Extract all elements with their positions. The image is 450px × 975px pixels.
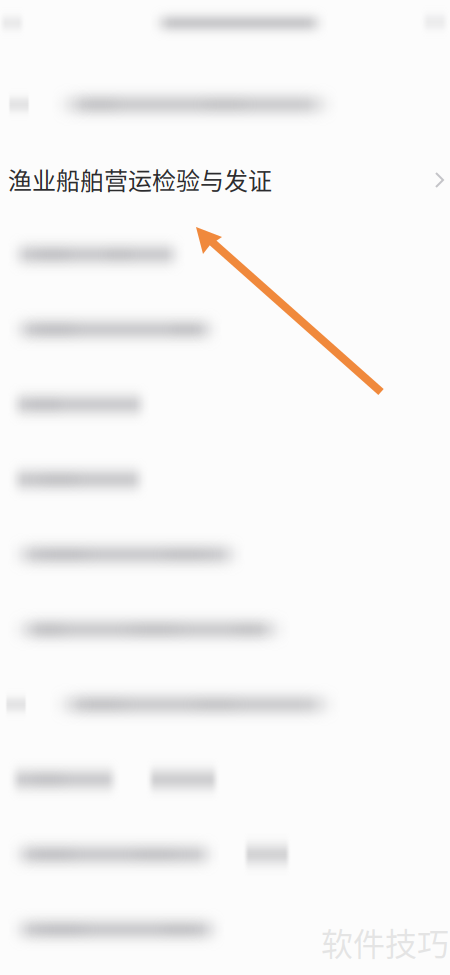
button[interactable]: List item [0,592,450,667]
button[interactable]: List item [0,67,450,142]
button[interactable]: List item [0,742,450,817]
staticText: 渔业船舶营运检验与发证 [8,162,272,197]
button[interactable]: List item [0,367,450,442]
button[interactable]: List item [0,892,450,967]
button[interactable]: 渔业船舶营运检验与发证 [0,142,450,975]
button[interactable]: List item [0,667,450,742]
button[interactable]: List item [0,442,450,517]
button[interactable]: List item [0,517,450,592]
button[interactable]: Back [0,0,48,46]
button[interactable]: List item [0,292,450,367]
button[interactable]: List item [0,217,450,292]
button[interactable]: List item [0,817,450,892]
button[interactable]: More [416,0,450,46]
staticText: 软件技巧 [321,919,449,965]
